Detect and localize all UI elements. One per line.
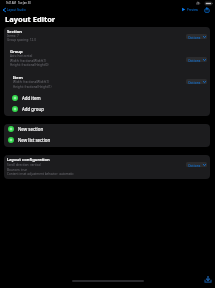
staticText: Group spacing: 12.0 <box>7 38 36 42</box>
button[interactable]: Options <box>186 79 207 84</box>
staticText: 9:41 AM <box>6 1 16 5</box>
staticText: Width: fractionalWidth(1) <box>10 59 47 63</box>
staticText: Items: 7 <box>7 34 19 38</box>
button[interactable]: Share <box>204 7 210 13</box>
staticText: Options <box>188 35 201 39</box>
staticText: Add group <box>22 106 44 112</box>
button[interactable]: Add item <box>4 92 210 103</box>
button[interactable]: New list section <box>4 134 210 145</box>
staticText: New list section <box>18 137 51 143</box>
staticText: Layout Studio <box>7 8 26 12</box>
button[interactable]: Layout Studio <box>2 7 26 12</box>
staticText: Height: fractionalHeight(0) <box>10 63 49 67</box>
staticText: Content inset adjustment behavior: autom… <box>7 172 74 176</box>
staticText: Add item <box>22 95 41 101</box>
staticText: Width: fractionalWidth(1) <box>13 80 50 84</box>
staticText: Section <box>7 29 22 35</box>
staticText: Options <box>188 80 201 84</box>
button[interactable]: Options <box>186 34 207 39</box>
staticText: Scroll direction: vertical <box>7 163 41 167</box>
staticText: Layout configuration <box>7 157 50 163</box>
staticText: Options <box>188 163 201 167</box>
button[interactable]: Options <box>186 57 207 62</box>
staticText: Layout Editor <box>5 14 56 24</box>
staticText: Group <box>10 49 23 55</box>
button[interactable]: New section <box>4 123 210 134</box>
staticText: Preview <box>187 8 198 12</box>
staticText: Height: fractionalHeight(1) <box>13 85 52 89</box>
staticText: Item <box>13 75 23 81</box>
staticText: Tue Jan 30 <box>18 1 31 5</box>
staticText: Options <box>188 58 201 62</box>
staticText: Bounces: true <box>7 168 28 172</box>
staticText: Axis: horizontal <box>10 54 33 58</box>
button[interactable]: Options <box>186 162 207 167</box>
button[interactable]: Preview <box>181 7 198 12</box>
staticText: New section <box>18 126 44 132</box>
button[interactable]: Export <box>203 274 213 284</box>
button[interactable]: Add group <box>4 103 210 114</box>
